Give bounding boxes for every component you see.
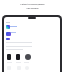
button[interactable]: App one	[7, 54, 11, 60]
staticText: you choose	[26, 7, 39, 10]
button[interactable]	[6, 32, 11, 36]
button[interactable]: App three	[25, 54, 31, 60]
button[interactable]: App two	[16, 54, 20, 60]
staticText: Listen to voices before	[20, 3, 45, 6]
